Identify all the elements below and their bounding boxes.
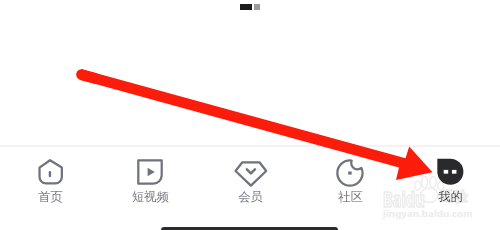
button[interactable]: 我的 (400, 145, 500, 205)
button[interactable]: 首页 (0, 145, 100, 205)
button[interactable]: 会员 (200, 145, 300, 205)
staticText: 会员 (238, 189, 263, 204)
staticText: 经验 (440, 188, 468, 206)
staticText: Baidu (383, 185, 425, 214)
button[interactable]: 社区 (300, 145, 400, 205)
button[interactable]: 短视频 (100, 145, 200, 205)
staticText: 社区 (338, 189, 363, 204)
staticText: 短视频 (132, 189, 169, 204)
staticText: 首页 (38, 189, 63, 204)
staticText: 我的 (438, 189, 463, 204)
staticText: jingyan.baidu.com (383, 207, 473, 220)
